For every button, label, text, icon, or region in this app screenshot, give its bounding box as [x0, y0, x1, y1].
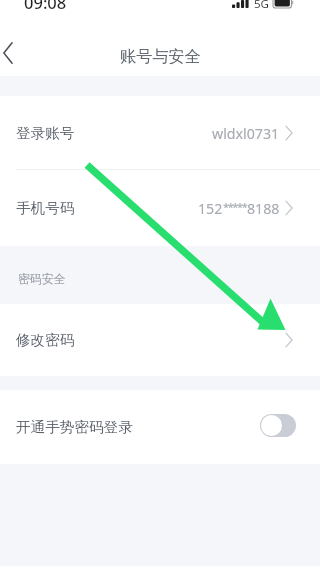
staticText: wldxl0731: [212, 124, 280, 143]
staticText: 修改密码: [16, 331, 75, 349]
button[interactable]: 修改密码: [0, 304, 320, 376]
staticText: 账号与安全: [120, 46, 201, 66]
staticText: 开通手势密码登录: [16, 418, 133, 436]
button[interactable]: 开通手势密码登录: [0, 390, 320, 464]
staticText: 密码安全: [18, 272, 66, 287]
staticText: *****: [223, 199, 247, 214]
staticText: 5G: [254, 0, 269, 12]
button[interactable]: 登录账号: [0, 96, 320, 170]
button[interactable]: 手机号码: [0, 170, 320, 246]
staticText: 09:08: [24, 0, 67, 13]
staticText: 152: [198, 199, 223, 218]
staticText: 登录账号: [16, 124, 75, 142]
button[interactable]: Toggle gesture password login: [260, 414, 296, 437]
button[interactable]: Back: [0, 31, 21, 75]
staticText: 手机号码: [16, 199, 75, 217]
staticText: 8188: [247, 199, 280, 218]
